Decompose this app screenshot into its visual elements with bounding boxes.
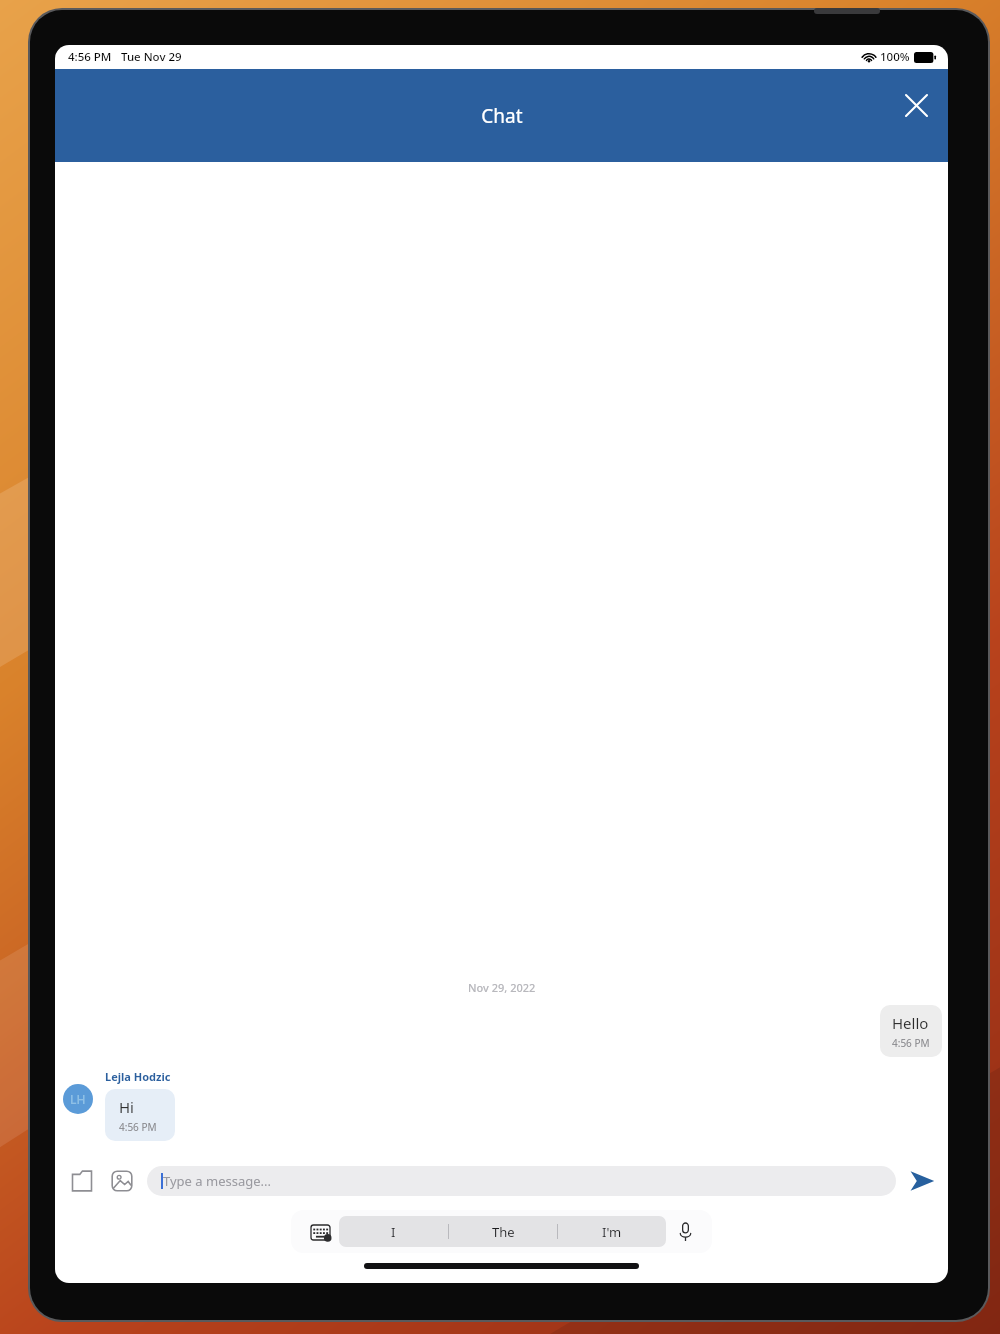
staticText: Hello xyxy=(892,1013,929,1033)
button[interactable]: Dictation xyxy=(670,1217,700,1247)
staticText: Type a message... xyxy=(163,1172,271,1190)
button[interactable]: I'm xyxy=(558,1216,666,1247)
staticText: Chat xyxy=(481,103,523,129)
button[interactable]: Close xyxy=(894,83,938,127)
button[interactable]: Send xyxy=(904,1163,940,1199)
button[interactable]: Hello xyxy=(880,1005,942,1057)
staticText: The xyxy=(492,1223,515,1241)
staticText: 4:56 PM xyxy=(892,1036,930,1050)
staticText: Tue Nov 29 xyxy=(121,49,182,65)
staticText: Lejla Hodzic xyxy=(105,1069,171,1084)
button[interactable]: Type a message... xyxy=(147,1166,896,1196)
staticText: LH xyxy=(70,1091,86,1107)
staticText: I'm xyxy=(602,1223,622,1241)
staticText: 100% xyxy=(880,49,910,65)
button[interactable]: Attach file xyxy=(65,1164,99,1198)
staticText: I xyxy=(391,1223,396,1241)
staticText: 4:56 PM xyxy=(68,49,112,65)
staticText: 4:56 PM xyxy=(119,1120,157,1134)
staticText: Hi xyxy=(119,1097,134,1117)
button[interactable]: Attach image xyxy=(105,1164,139,1198)
button[interactable]: The xyxy=(449,1216,557,1247)
button[interactable]: Keyboard settings xyxy=(305,1217,335,1247)
button[interactable]: I xyxy=(339,1216,448,1247)
staticText: Nov 29, 2022 xyxy=(468,980,536,995)
button[interactable]: Hi xyxy=(105,1089,175,1141)
button[interactable]: Lejla Hodzic avatar xyxy=(63,1084,93,1114)
